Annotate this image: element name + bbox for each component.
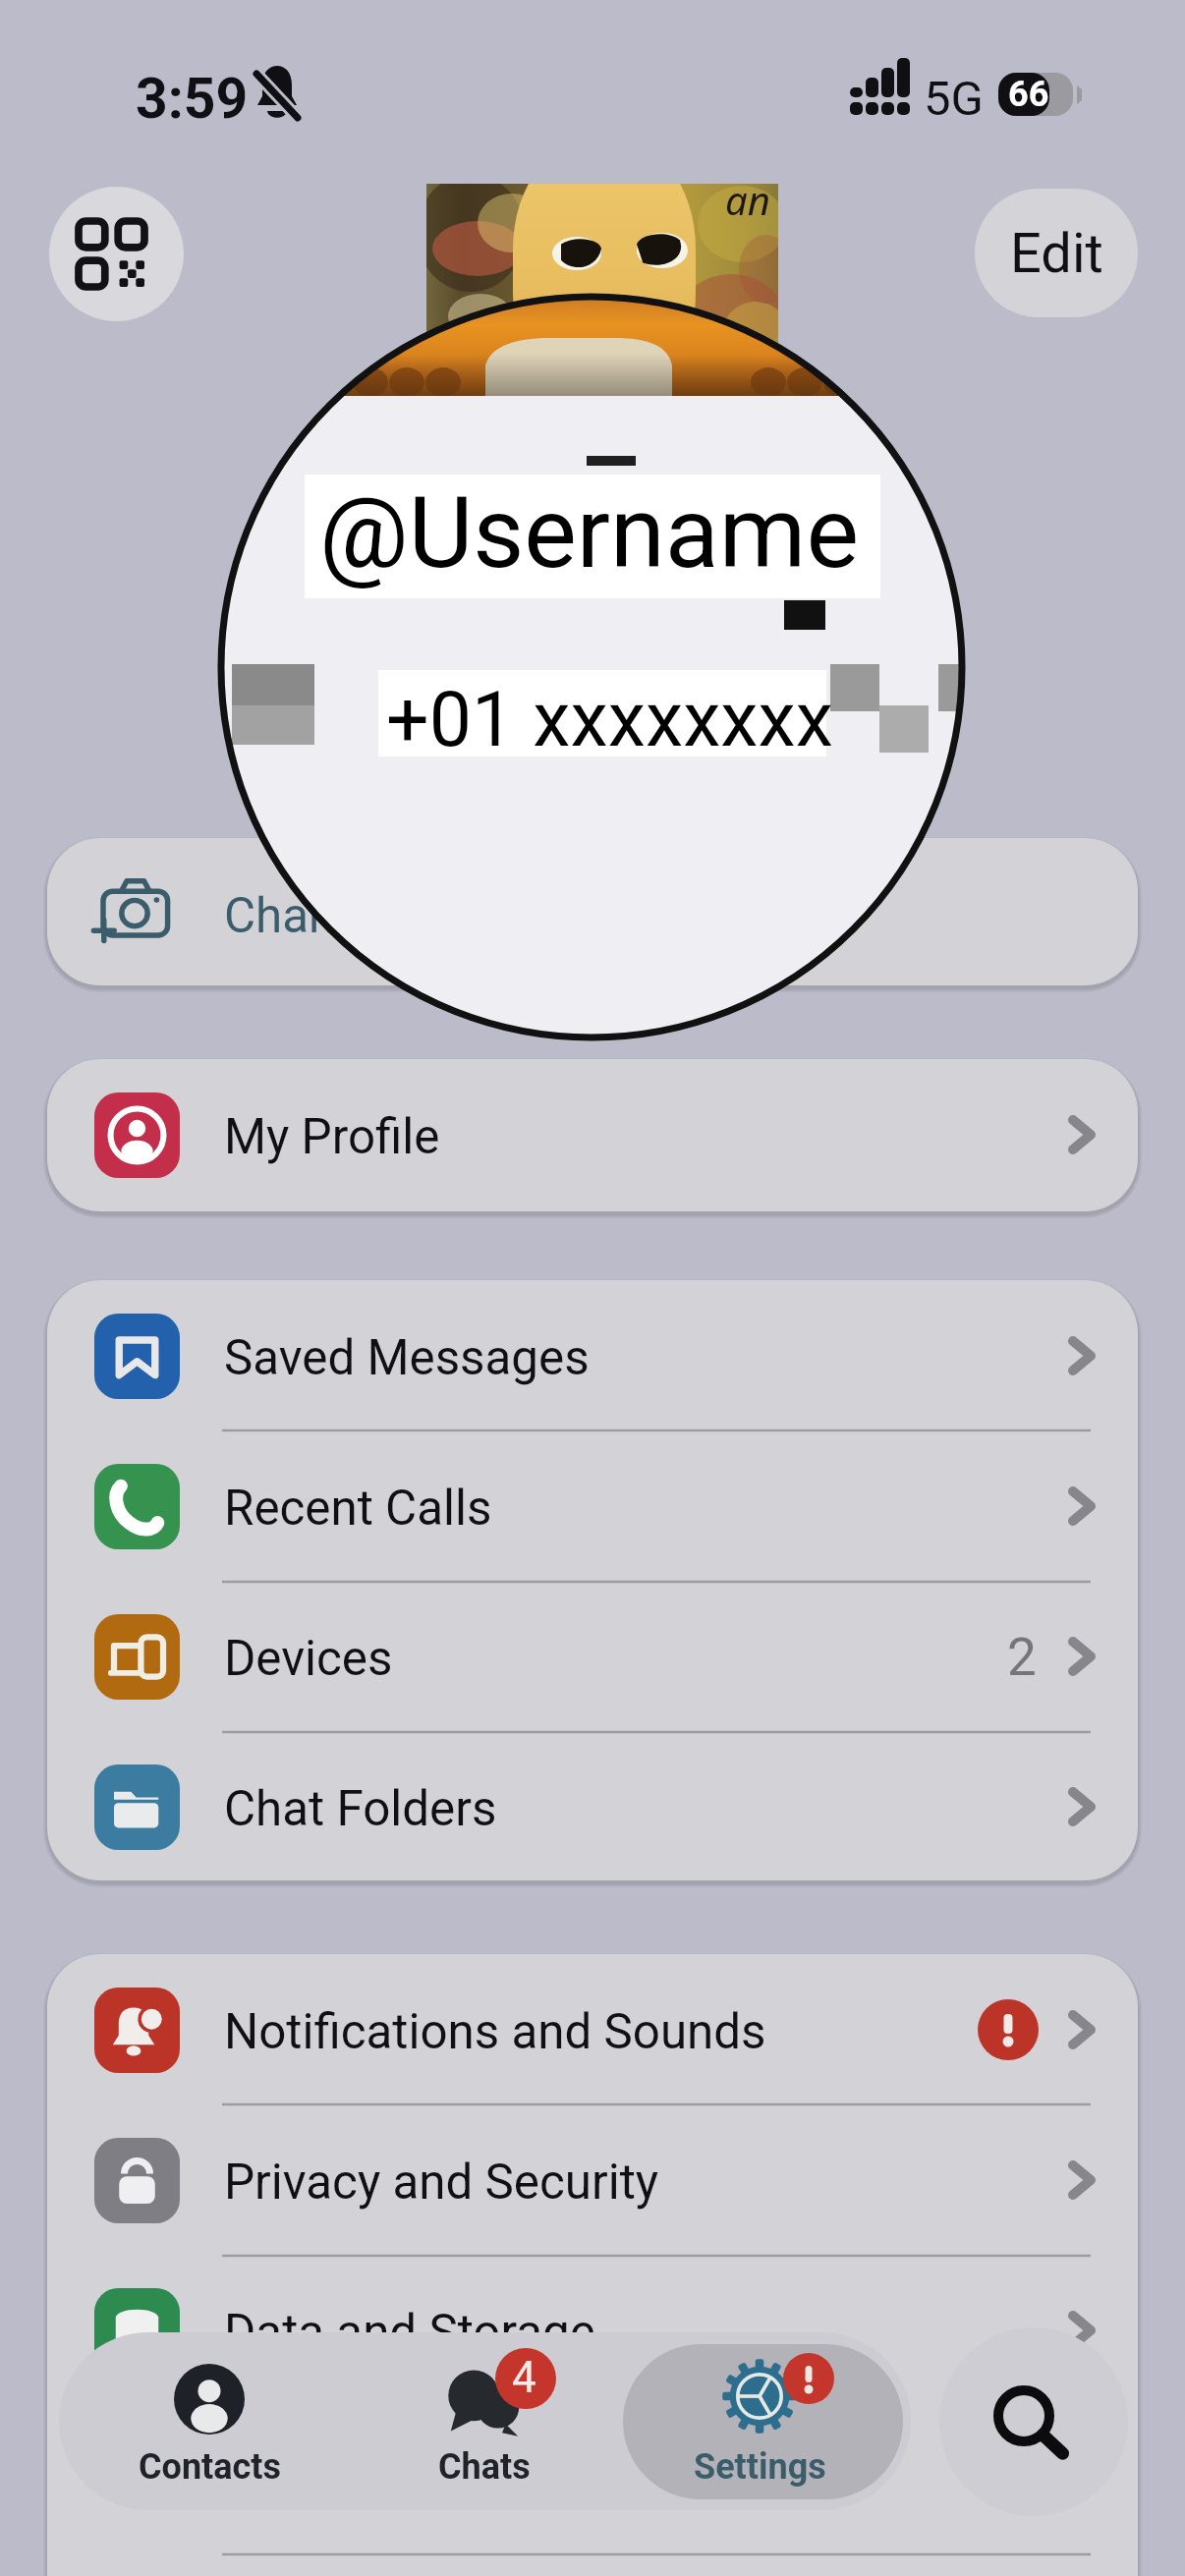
button[interactable]: Data and Storage xyxy=(47,2249,1138,2398)
staticText: Recent Calls xyxy=(224,1480,492,1537)
button[interactable]: Settings xyxy=(627,2344,892,2499)
staticText: +01 xxxxxxxx xyxy=(386,676,833,764)
staticText: 5G xyxy=(924,71,984,127)
staticText: 2 xyxy=(1007,1627,1037,1688)
button[interactable]: Privacy and Security xyxy=(47,2099,1138,2248)
staticText: Chats xyxy=(438,2446,531,2488)
staticText: Saved Messages xyxy=(224,1329,590,1386)
staticText: @Username xyxy=(319,475,859,590)
staticText: an xyxy=(725,173,770,226)
button[interactable]: Saved Messages xyxy=(47,1274,1138,1424)
button[interactable]: Edit xyxy=(975,189,1138,317)
button[interactable]: My Profile xyxy=(47,1053,1138,1203)
staticText: 66 xyxy=(1008,74,1049,115)
button[interactable]: QR code xyxy=(49,187,184,321)
button[interactable]: Devices xyxy=(47,1575,1138,1724)
button[interactable]: Chat Folders xyxy=(47,1725,1138,1875)
button[interactable] xyxy=(623,2344,903,2499)
button[interactable]: Recent Calls xyxy=(47,1425,1138,1574)
staticText: Data and Storage xyxy=(224,2304,595,2361)
staticText: Notifications and Sounds xyxy=(224,2003,766,2060)
staticText: Change Profile Photo xyxy=(224,887,679,944)
staticText: 4 xyxy=(512,2352,536,2403)
staticText: Privacy and Security xyxy=(224,2154,659,2211)
staticText: My Profile xyxy=(224,1108,440,1165)
staticText: Devices xyxy=(224,1630,393,1687)
staticText: Chat Folders xyxy=(224,1780,497,1837)
staticText: Contacts xyxy=(139,2446,281,2488)
button[interactable]: Notifications and Sounds xyxy=(47,1948,1138,2098)
staticText: Edit xyxy=(1010,221,1103,286)
button[interactable]: Chats xyxy=(352,2344,617,2499)
staticText: 3:59 xyxy=(136,66,249,132)
button[interactable]: Change Profile Photo xyxy=(47,832,1138,981)
button[interactable]: Contacts xyxy=(77,2344,342,2499)
staticText: Settings xyxy=(694,2446,826,2488)
button[interactable]: Search xyxy=(939,2327,1128,2516)
